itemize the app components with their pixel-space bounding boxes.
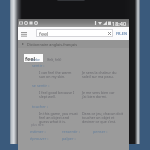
button[interactable]: sentir › [18,63,129,73]
button[interactable]: toucher › [18,104,129,118]
button[interactable]: estimer › [30,129,46,134]
staticText: plus rare: [31,123,45,127]
button[interactable]: éprouver › [30,136,49,141]
staticText: FR-EN [116,31,128,36]
staticText: feel [25,55,36,62]
button[interactable]: feel [24,54,43,62]
button[interactable]: Clear query [105,29,113,37]
staticText: Je me sens bien car j'ai bien dormi. [82,90,126,100]
staticText: éprouver › [30,136,49,141]
staticText: I can feel the warm sun on my skin. [39,70,79,80]
staticText: I feel good because I slept well. [39,90,79,100]
staticText: ressentir › [62,129,80,134]
staticText: 18:40 [112,20,127,27]
button[interactable]: se sentir › [18,83,129,93]
button[interactable]: ressentir › [62,129,80,134]
staticText: penser › [93,129,108,134]
staticText: Je sens la chaleur du soleil sur ma peau… [82,70,126,80]
button[interactable]: palper › [62,136,76,141]
staticText: (felt, felt) [47,57,62,62]
staticText: estimer › [30,129,46,134]
staticText: se sentir › [32,83,50,88]
button[interactable]: FR-EN [116,29,128,38]
button[interactable]: penser › [93,129,108,134]
staticText: feel [39,30,49,37]
staticText: Dans ce jeu, chacun doit toucher un obje… [82,111,126,125]
button[interactable]: Open navigation menu [20,30,28,38]
staticText: toucher › [32,104,49,109]
button[interactable]: feel [36,29,113,37]
staticText: verbe [31,57,41,62]
button[interactable]: Dictionnaire anglais-français [18,40,129,48]
staticText: In this game, you must feel an object an… [39,111,79,125]
staticText: sentir › [32,63,45,68]
staticText: palper › [62,136,76,141]
staticText: Dictionnaire anglais-français [27,42,77,47]
